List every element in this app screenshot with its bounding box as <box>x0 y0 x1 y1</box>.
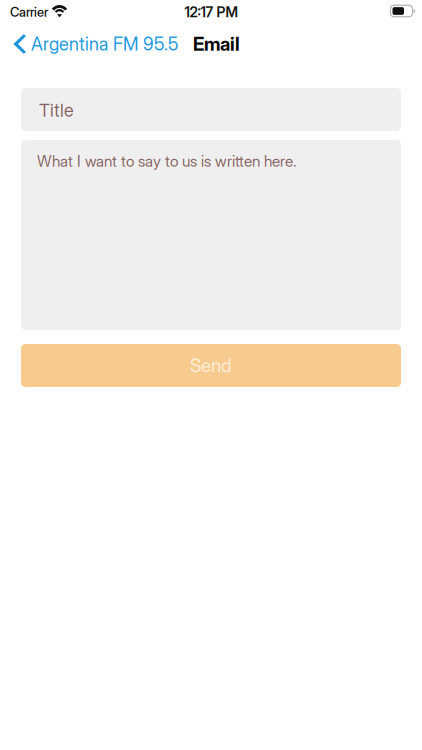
staticText: Carrier <box>10 4 48 20</box>
button[interactable]: Send <box>21 344 401 387</box>
button[interactable]: Argentina FM 95.5 <box>0 28 178 60</box>
button[interactable]: What I want to say to us is written here… <box>21 140 401 330</box>
staticText: 12:17 PM <box>184 3 237 20</box>
staticText: Email <box>193 33 240 55</box>
staticText: What I want to say to us is written here… <box>37 152 296 171</box>
button[interactable]: Title <box>21 88 401 131</box>
staticText: Argentina FM 95.5 <box>31 33 178 55</box>
staticText: Title <box>39 99 74 121</box>
staticText: Send <box>190 354 232 377</box>
